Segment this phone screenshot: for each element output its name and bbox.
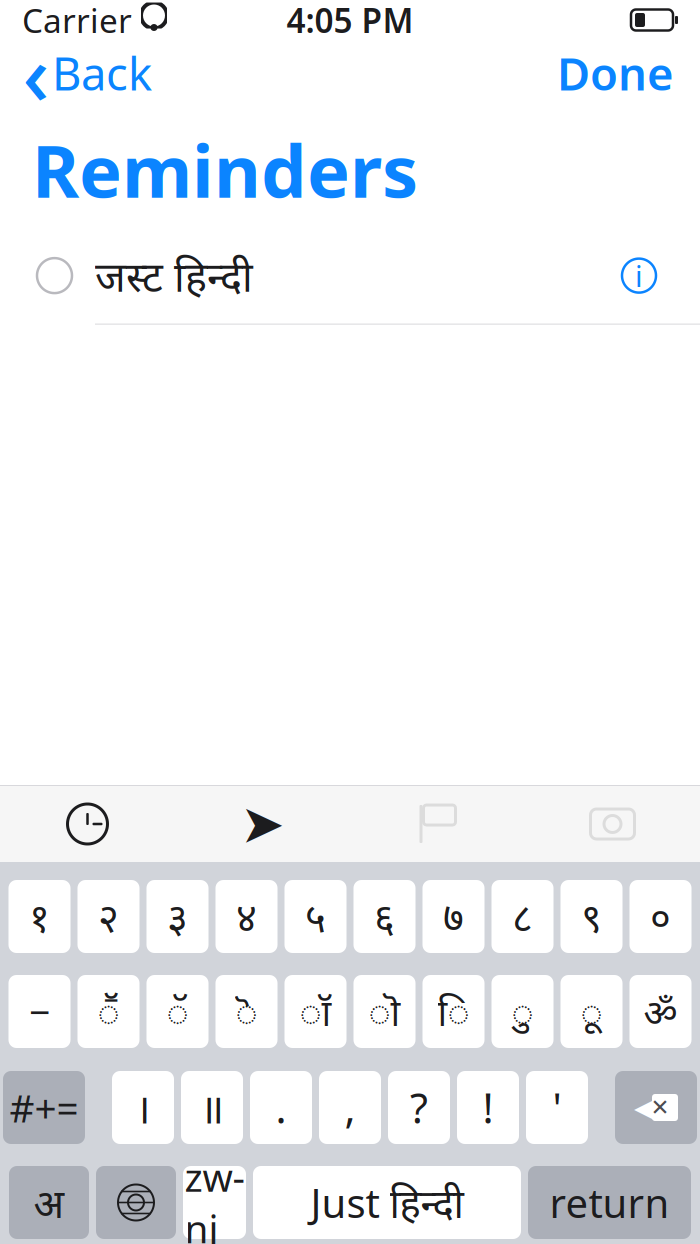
staticText: ६ xyxy=(374,890,395,943)
button[interactable]: ५ xyxy=(284,880,346,953)
staticText: १ xyxy=(29,890,50,943)
staticText: ३ xyxy=(167,890,188,943)
button[interactable]: Delete xyxy=(615,1071,697,1144)
staticText: ? xyxy=(410,1080,428,1135)
button[interactable]: zwnj xyxy=(183,1166,246,1239)
staticText: ५ xyxy=(305,890,326,943)
button[interactable]: ! xyxy=(457,1071,519,1144)
button[interactable]: Just हिन्दी xyxy=(253,1166,521,1239)
staticText: जस्ट हिन्दी xyxy=(95,248,253,303)
staticText: ७ xyxy=(443,890,464,943)
staticText: #+= xyxy=(9,1082,78,1133)
staticText: ॕ xyxy=(97,987,119,1036)
button[interactable]: ० xyxy=(629,880,691,953)
button[interactable]: ६ xyxy=(353,880,415,953)
staticText: Just हिन्दी xyxy=(310,1176,463,1229)
button[interactable]: ८ xyxy=(491,880,553,953)
staticText: ‹ xyxy=(22,18,49,128)
staticText: Back xyxy=(52,43,152,103)
staticText: ॅ xyxy=(166,987,188,1036)
button[interactable]: ू xyxy=(560,975,622,1048)
button[interactable]: ? xyxy=(388,1071,450,1144)
staticText: ! xyxy=(482,1080,493,1135)
staticText: ॉ xyxy=(299,987,331,1036)
staticText: ८ xyxy=(512,890,533,943)
staticText: ✕ xyxy=(650,1095,669,1120)
button[interactable]: − xyxy=(8,975,70,1048)
staticText: ॥ xyxy=(199,1080,224,1135)
button[interactable]: Remind me at a time xyxy=(0,786,175,862)
staticText: ४ xyxy=(236,890,257,943)
button[interactable]: ९ xyxy=(560,880,622,953)
button[interactable]: ७ xyxy=(422,880,484,953)
button[interactable]: ॥ xyxy=(181,1071,243,1144)
staticText: ू xyxy=(580,987,602,1036)
button[interactable]: ॐ xyxy=(629,975,691,1048)
staticText: ॊ xyxy=(368,987,400,1036)
staticText: ९ xyxy=(581,890,602,943)
button[interactable]: . xyxy=(250,1071,312,1144)
staticText: २ xyxy=(98,890,119,943)
button[interactable]: ु xyxy=(491,975,553,1048)
staticText: Carrier xyxy=(22,0,132,42)
button[interactable]: ॆ xyxy=(215,975,277,1048)
staticText: ➤ xyxy=(240,794,285,854)
staticText: ' xyxy=(552,1080,561,1135)
staticText: ॐ xyxy=(643,987,677,1036)
button[interactable]: ि xyxy=(422,975,484,1048)
staticText: 4:05 PM xyxy=(286,0,413,42)
staticText: i xyxy=(635,256,643,295)
staticText: । xyxy=(135,1080,151,1135)
button[interactable]: अ xyxy=(9,1166,89,1239)
button[interactable]: ४ xyxy=(215,880,277,953)
staticText: ॆ xyxy=(235,987,257,1036)
button[interactable]: । xyxy=(112,1071,174,1144)
button[interactable]: Add attachment xyxy=(525,786,700,862)
button[interactable]: return xyxy=(528,1166,691,1239)
button[interactable]: ३ xyxy=(146,880,208,953)
button[interactable]: ॉ xyxy=(284,975,346,1048)
staticText: − xyxy=(29,987,50,1036)
button[interactable]: ॅ xyxy=(146,975,208,1048)
button[interactable]: Done xyxy=(553,35,678,111)
button[interactable]: Flag xyxy=(350,786,525,862)
staticText: ० xyxy=(650,890,671,943)
button[interactable]: १ xyxy=(8,880,70,953)
button[interactable]: Next keyboard xyxy=(96,1166,176,1239)
button[interactable]: ' xyxy=(526,1071,588,1144)
staticText: zwnj xyxy=(184,1151,244,1244)
button[interactable]: , xyxy=(319,1071,381,1144)
staticText: ु xyxy=(511,987,533,1036)
button[interactable]: ‹ xyxy=(22,35,156,111)
button[interactable]: Details xyxy=(622,256,700,295)
staticText: , xyxy=(344,1080,355,1135)
button[interactable]: २ xyxy=(77,880,139,953)
button[interactable]: #+= xyxy=(3,1071,85,1144)
staticText: return xyxy=(549,1176,669,1229)
button[interactable]: Remind me at a location xyxy=(175,786,350,862)
button[interactable]: ॕ xyxy=(77,975,139,1048)
staticText: अ xyxy=(33,1176,64,1229)
staticText: . xyxy=(275,1080,286,1135)
staticText: ि xyxy=(437,987,469,1036)
staticText: Reminders xyxy=(32,122,418,218)
button[interactable]: ॊ xyxy=(353,975,415,1048)
staticText: ◀ xyxy=(634,1092,656,1123)
button[interactable]: Mark complete xyxy=(0,248,72,303)
staticText: Done xyxy=(557,43,674,103)
